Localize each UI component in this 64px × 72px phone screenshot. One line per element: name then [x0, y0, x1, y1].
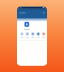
button[interactable]: Profile: [43, 12, 45, 14]
button[interactable]: Cards: [30, 32, 35, 38]
button[interactable]: More: [41, 32, 46, 38]
button[interactable]: Invest: [35, 32, 41, 38]
staticText: 9:41: [19, 7, 22, 9]
button[interactable]: App: [24, 22, 29, 30]
button[interactable]: Transfer: [19, 32, 25, 38]
button[interactable]: Pay: [25, 32, 30, 38]
